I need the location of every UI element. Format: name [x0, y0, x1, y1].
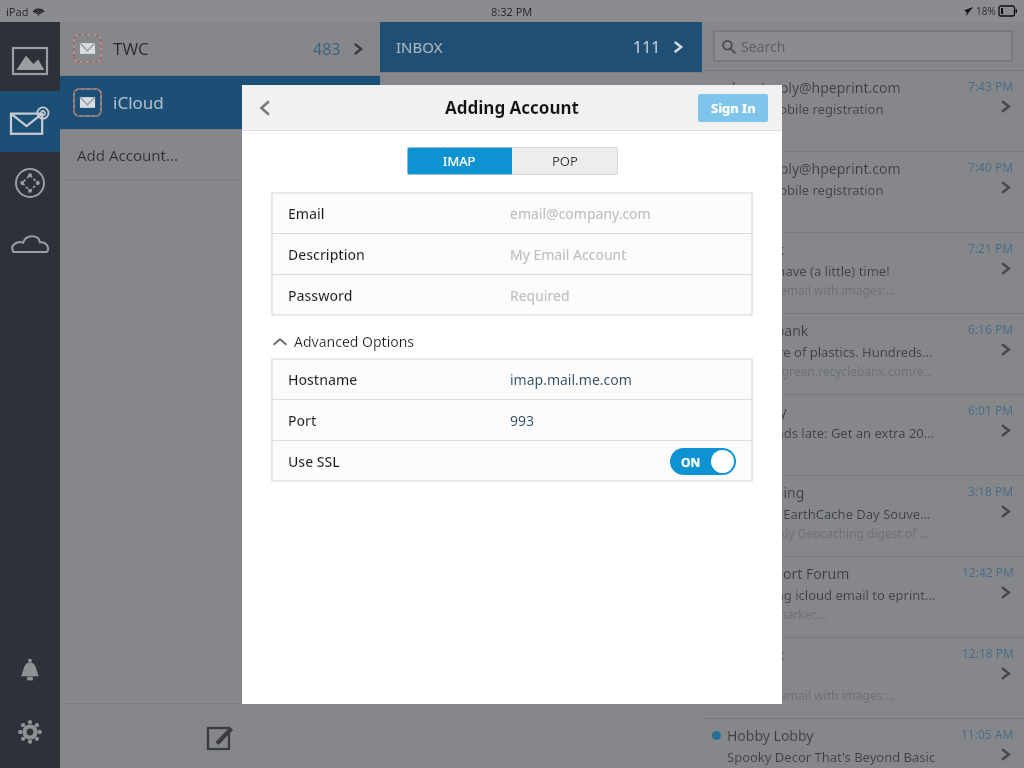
staticText: ePrint mobile registration — [727, 100, 884, 118]
staticText: 7:40 PM — [968, 159, 1014, 175]
button[interactable]: Old Navy — [702, 395, 1024, 475]
button[interactable]: Network — [0, 152, 60, 213]
button[interactable]: Email — [272, 193, 752, 233]
button[interactable]: donotreply@hpeprint.com — [702, 71, 1024, 151]
staticText: 11:05 AM — [961, 726, 1014, 742]
staticText: ePrint mobile registration — [727, 181, 884, 199]
button[interactable]: Hobby Lobby — [702, 719, 1024, 768]
staticText: email@company.com — [510, 204, 651, 223]
staticText: imap.mail.me.com — [510, 370, 632, 389]
button[interactable]: HP Support Forum — [702, 557, 1024, 637]
button[interactable]: Mail — [0, 91, 60, 152]
staticText: iPad — [6, 4, 29, 19]
staticText: donotreply@hpeprint.com — [727, 159, 901, 178]
staticText: 483 — [313, 38, 341, 60]
button[interactable]: Photos — [0, 30, 60, 91]
button[interactable]: Use SSL — [272, 441, 752, 481]
staticText: Description — [288, 245, 365, 264]
button[interactable]: iCloud — [60, 76, 380, 129]
staticText: Recyclebank — [727, 321, 809, 340]
staticText: 12:42 PM — [962, 564, 1014, 580]
staticText: ON — [681, 454, 701, 470]
staticText: 6:16 PM — [968, 321, 1014, 337]
staticText: Get Your EarthCache Day Souvenir This... — [727, 505, 936, 523]
staticText: http://livegreen.recyclebank.com/earn-po… — [727, 363, 936, 379]
button[interactable]: Back — [242, 85, 288, 130]
staticText: 18% — [976, 4, 996, 18]
staticText: Email — [288, 204, 325, 223]
staticText: TWC — [113, 37, 149, 60]
staticText: Required — [510, 286, 570, 305]
button[interactable]: Hostname — [272, 359, 752, 399]
staticText: You still have (a little) time! — [727, 262, 890, 280]
button[interactable]: Compose — [60, 704, 380, 768]
staticText: Advanced Options — [294, 332, 415, 351]
staticText: Hobby Lobby — [727, 726, 814, 745]
staticText: HP Support Forum — [727, 564, 850, 583]
button[interactable]: IMAP — [407, 147, 512, 175]
staticText: Adding Account — [445, 96, 579, 119]
staticText: Add Account... — [77, 145, 179, 165]
staticText: donotreply@hpeprint.com — [727, 78, 901, 97]
staticText: 12:18 PM — [962, 645, 1014, 661]
staticText: 7:43 PM — [968, 78, 1014, 94]
staticText: Your weekly Geocaching digest of news, t… — [727, 525, 936, 541]
staticText: 3:18 PM — [968, 483, 1014, 499]
button[interactable]: Geocaching — [702, 476, 1024, 556]
staticText: Hurry, ends late: Get an extra 20% off o… — [727, 424, 936, 442]
button[interactable]: Search — [714, 31, 1012, 61]
staticText: Sign In — [711, 99, 756, 117]
staticText: 6:01 PM — [968, 402, 1014, 418]
button[interactable]: Dropbox — [702, 638, 1024, 718]
staticText: Geocaching — [727, 483, 805, 502]
staticText: Spooky Decor That's Beyond Basic — [727, 748, 936, 766]
staticText: iCloud — [113, 91, 164, 114]
staticText: 8:32 PM — [491, 4, 533, 19]
button[interactable]: Recyclebank — [702, 314, 1024, 394]
staticText: Dropbox — [727, 645, 785, 664]
button[interactable]: Dropbox — [702, 233, 1024, 313]
button[interactable]: Settings — [0, 701, 60, 762]
staticText: 111 — [633, 36, 661, 58]
button[interactable]: INBOX — [380, 22, 702, 72]
button[interactable]: Notifications — [0, 640, 60, 701]
button[interactable]: Use SSL on — [670, 448, 736, 475]
staticText: POP — [552, 152, 578, 170]
staticText: Old Navy — [727, 402, 787, 421]
staticText: Hostname — [288, 370, 358, 389]
button[interactable]: Port — [272, 400, 752, 440]
staticText: Use SSL — [288, 452, 340, 471]
staticText: IMAP — [443, 152, 476, 170]
staticText: RE: adding icloud email to eprint (HP Su… — [727, 586, 936, 604]
button[interactable]: Add Account... — [60, 130, 380, 180]
staticText: 7:21 PM — [968, 240, 1014, 256]
button[interactable]: Password — [272, 275, 752, 315]
staticText: Port — [288, 411, 317, 430]
staticText: Password — [288, 286, 353, 305]
staticText: My Email Account — [510, 245, 627, 264]
staticText: Search — [741, 37, 786, 56]
button[interactable]: Sign In — [698, 94, 768, 122]
staticText: Dropbox — [727, 240, 785, 259]
button[interactable]: TWC — [60, 22, 380, 75]
staticText: INBOX — [396, 37, 443, 57]
button[interactable]: POP — [512, 147, 618, 175]
button[interactable]: Cloud — [0, 213, 60, 274]
button[interactable]: Description — [272, 234, 752, 274]
button[interactable]: donotreply@hpeprint.com — [702, 152, 1024, 232]
staticText: hello mr_harker,... — [727, 606, 828, 622]
button[interactable]: Advanced Options — [273, 332, 415, 351]
staticText: View this email with images:... — [727, 687, 896, 703]
staticText: The future of plastics. Hundreds of poin… — [727, 343, 936, 361]
staticText: View this email with images:... — [727, 282, 896, 298]
staticText: 993 — [510, 411, 535, 430]
